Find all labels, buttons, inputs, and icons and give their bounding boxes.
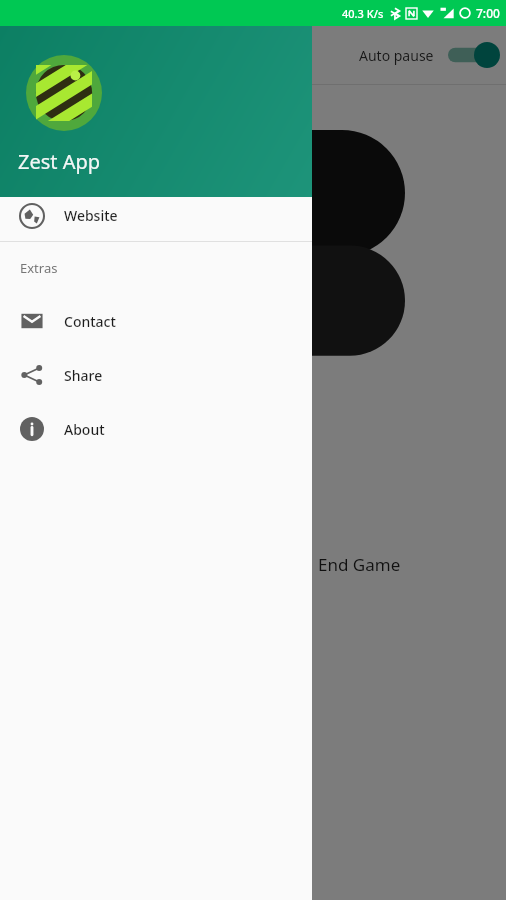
button[interactable]: Website <box>0 198 312 233</box>
staticText: Share <box>64 366 103 385</box>
staticText: Extras <box>20 259 58 277</box>
staticText: Zest App <box>18 148 101 175</box>
staticText: Contact <box>64 312 116 331</box>
staticText: Website <box>64 206 118 225</box>
button[interactable]: Share <box>0 348 312 402</box>
button[interactable]: About <box>0 402 312 456</box>
button[interactable]: Auto pause <box>0 26 506 84</box>
staticText: 7:00 <box>476 5 500 21</box>
staticText: Auto pause <box>359 46 434 65</box>
button[interactable]: Contact <box>0 294 312 348</box>
staticText: About <box>64 420 105 439</box>
button[interactable]: End Game <box>318 553 401 576</box>
staticText: 40.3 K/s <box>342 6 384 21</box>
